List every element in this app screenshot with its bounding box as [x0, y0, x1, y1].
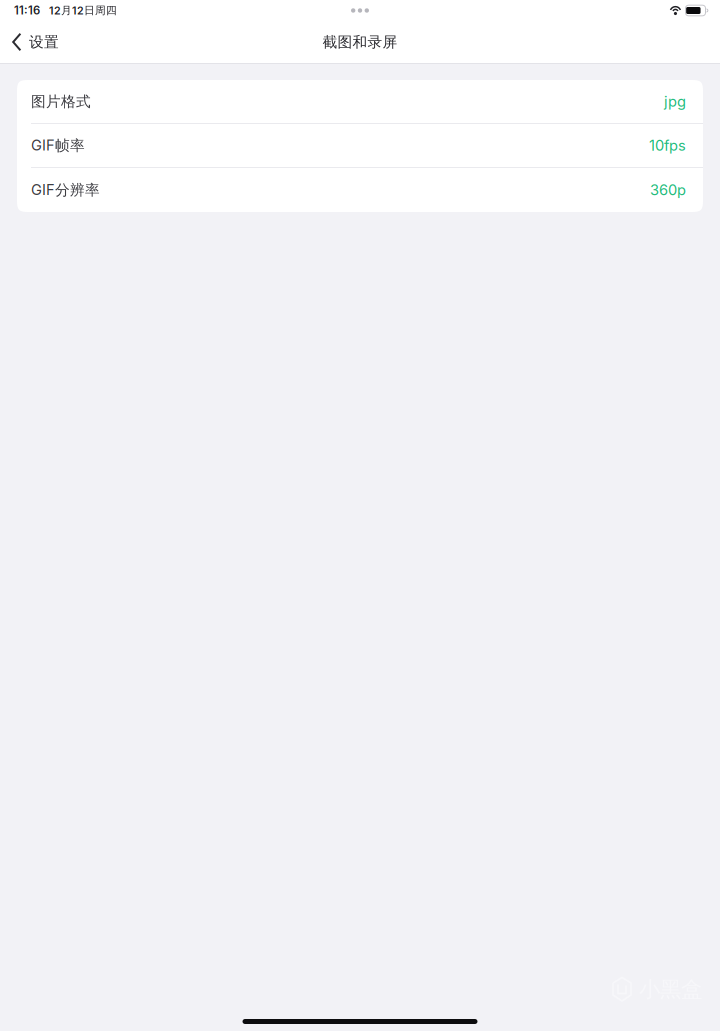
- staticText: 图片格式: [31, 92, 91, 111]
- staticText: GIF分辨率: [31, 181, 100, 199]
- staticText: 360p: [650, 181, 686, 199]
- staticText: jpg: [664, 93, 686, 110]
- staticText: 截图和录屏: [322, 33, 397, 51]
- button[interactable]: GIF分辨率: [17, 168, 703, 212]
- staticText: 11:16: [14, 4, 40, 17]
- button[interactable]: 设置: [0, 21, 69, 63]
- staticText: 12月12日周四: [49, 4, 117, 17]
- button[interactable]: 图片格式: [17, 80, 703, 124]
- staticText: 10fps: [649, 137, 686, 154]
- staticText: 设置: [29, 33, 59, 51]
- staticText: GIF帧率: [31, 136, 85, 155]
- button[interactable]: GIF帧率: [17, 124, 703, 168]
